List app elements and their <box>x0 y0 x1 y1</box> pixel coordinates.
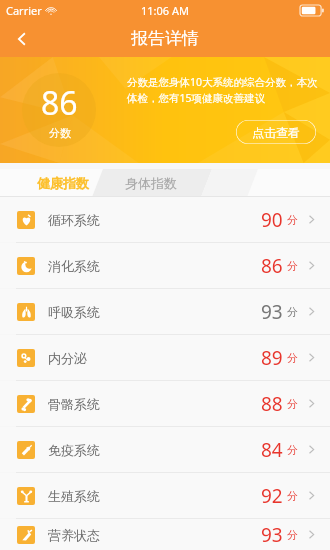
button[interactable]: 免疫系统 <box>0 427 330 472</box>
staticText: 84 <box>261 437 283 463</box>
staticText: 分 <box>287 443 298 457</box>
button[interactable]: 健康指数 <box>28 169 98 197</box>
staticText: 内分泌 <box>48 350 87 366</box>
staticText: 93 <box>261 522 283 548</box>
button[interactable]: 呼吸系统 <box>0 289 330 334</box>
staticText: 骨骼系统 <box>48 396 100 412</box>
staticText: 分 <box>287 528 298 542</box>
staticText: 分 <box>287 397 298 411</box>
staticText: 分 <box>287 489 298 503</box>
staticText: 分数是您身体10大系统的综合分数，本次体检，您有15项健康改善建议 <box>127 75 320 105</box>
staticText: 86 <box>261 253 283 279</box>
staticText: 89 <box>261 345 283 371</box>
staticText: 90 <box>261 207 283 233</box>
staticText: 92 <box>261 483 283 509</box>
staticText: 点击查看 <box>252 125 300 140</box>
staticText: 93 <box>261 299 283 325</box>
staticText: 88 <box>261 391 283 417</box>
button[interactable]: 点击查看 <box>236 120 316 144</box>
button[interactable]: 返回 <box>0 20 44 57</box>
staticText: 生殖系统 <box>48 488 100 504</box>
staticText: 报告详情 <box>131 28 199 49</box>
button[interactable]: 身体指数 <box>110 169 192 197</box>
staticText: 免疫系统 <box>48 442 100 458</box>
staticText: Carrier <box>6 3 42 18</box>
button[interactable]: 内分泌 <box>0 335 330 380</box>
staticText: 呼吸系统 <box>48 304 100 320</box>
button[interactable]: 消化系统 <box>0 243 330 288</box>
staticText: 分 <box>287 305 298 319</box>
button[interactable]: 营养状态 <box>0 519 330 550</box>
staticText: 营养状态 <box>48 527 100 543</box>
staticText: 分数 <box>49 126 71 140</box>
staticText: 健康指数 <box>37 175 89 191</box>
staticText: 循环系统 <box>48 212 100 228</box>
button[interactable]: 生殖系统 <box>0 473 330 518</box>
staticText: 86 <box>41 81 78 125</box>
staticText: 身体指数 <box>125 175 177 191</box>
staticText: 分 <box>287 351 298 365</box>
staticText: 11:06 AM <box>141 3 189 18</box>
staticText: 分 <box>287 213 298 227</box>
button[interactable]: 循环系统 <box>0 197 330 242</box>
staticText: 消化系统 <box>48 258 100 274</box>
button[interactable]: 骨骼系统 <box>0 381 330 426</box>
staticText: 分 <box>287 259 298 273</box>
